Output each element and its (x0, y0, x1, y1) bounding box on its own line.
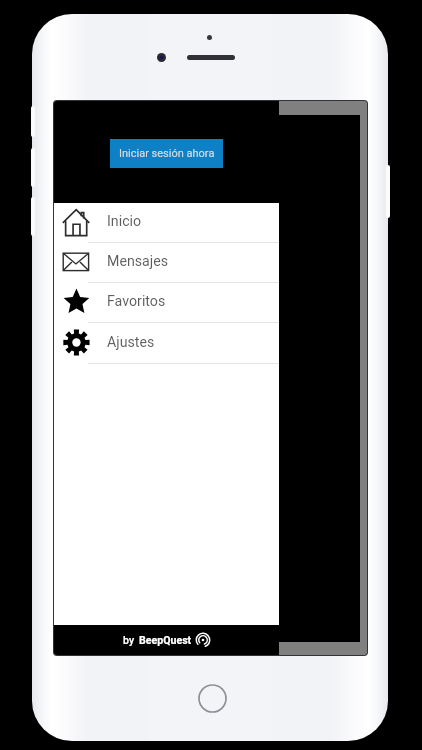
staticText: by (123, 634, 135, 646)
staticText: Iniciar sesión ahora (119, 147, 215, 160)
staticText: BeepQuest (139, 634, 192, 646)
button[interactable]: Iniciar sesión ahora (110, 139, 223, 168)
staticText: Ajustes (107, 334, 155, 351)
button[interactable]: Favoritos (54, 283, 279, 322)
button[interactable]: Mensajes (54, 243, 279, 282)
button[interactable]: Ajustes (54, 323, 279, 363)
staticText: Mensajes (107, 253, 169, 270)
button[interactable]: Inicio (54, 203, 279, 242)
staticText: Favoritos (107, 293, 166, 310)
staticText: Inicio (107, 213, 142, 230)
